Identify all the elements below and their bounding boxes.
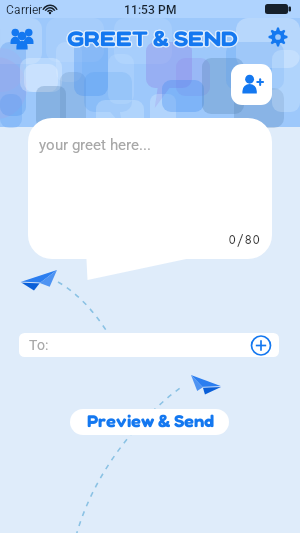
button[interactable]: Contacts	[6, 22, 42, 52]
button[interactable]	[70, 409, 229, 435]
button[interactable]: Add recipient	[250, 334, 273, 357]
button[interactable]	[28, 118, 272, 262]
button[interactable]	[19, 333, 279, 357]
button[interactable]: Settings	[262, 22, 294, 52]
button[interactable]: Add contact	[231, 64, 272, 105]
